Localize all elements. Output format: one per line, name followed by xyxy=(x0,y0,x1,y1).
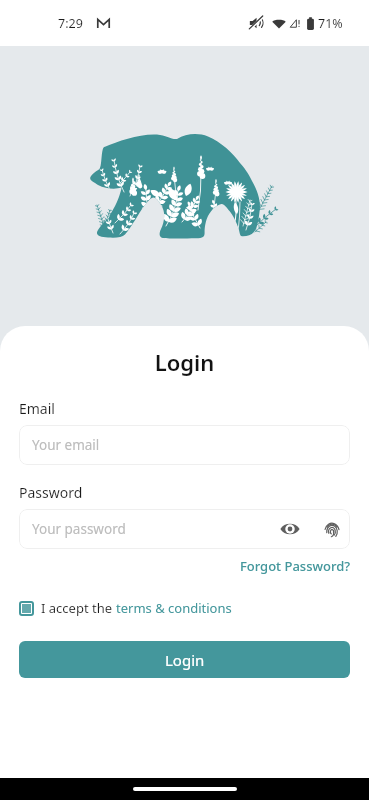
staticText: Login xyxy=(165,650,205,670)
button[interactable]: Show password xyxy=(277,516,303,542)
staticText: Your email xyxy=(32,436,100,454)
staticText: Email xyxy=(19,399,55,418)
staticText: Password xyxy=(19,483,83,502)
button[interactable]: Fingerprint login xyxy=(319,516,345,542)
staticText: I accept the xyxy=(41,599,116,617)
button[interactable]: Your email xyxy=(19,425,350,465)
staticText: Login xyxy=(19,347,350,377)
staticText: 7:29 xyxy=(58,15,83,32)
button[interactable]: Your password xyxy=(19,509,350,549)
staticText: 71% xyxy=(318,15,343,32)
button[interactable]: Forgot Password? xyxy=(19,557,350,575)
staticText: terms & conditions xyxy=(116,599,232,617)
staticText: Your password xyxy=(32,520,126,538)
button[interactable]: I accept the xyxy=(19,599,350,617)
button[interactable]: Login xyxy=(19,641,350,678)
